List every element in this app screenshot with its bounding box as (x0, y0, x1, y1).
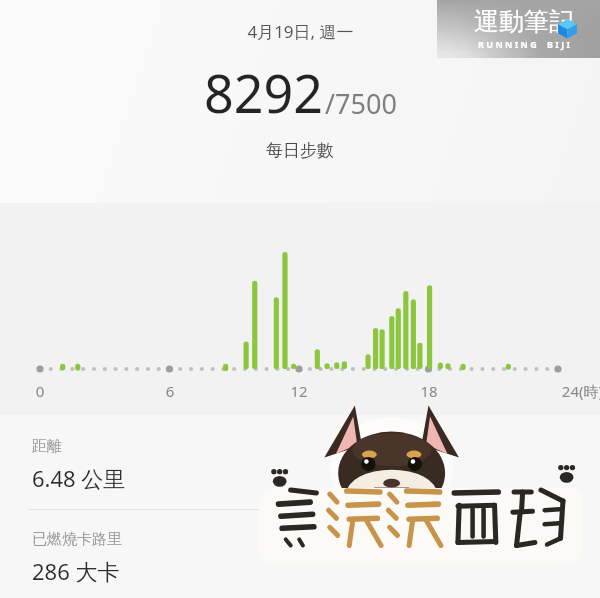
staticText: 12 (279, 381, 319, 401)
staticText: 286 大卡 (32, 556, 120, 586)
staticText: 6 (150, 381, 190, 401)
staticText: 已燃燒卡路里 (32, 530, 122, 549)
button[interactable]: 距離 (0, 415, 600, 509)
staticText: 0 (20, 381, 60, 401)
staticText: R U N N I N G (478, 38, 537, 50)
staticText: 4月19日, 週一 (247, 20, 354, 43)
staticText: 24(時) (513, 381, 600, 401)
staticText: 6.48 公里 (32, 463, 126, 493)
staticText: 距離 (32, 437, 62, 456)
button[interactable]: 已燃燒卡路里 (0, 510, 600, 598)
staticText: /7500 (325, 85, 397, 122)
staticText: 運動筆記 (474, 6, 574, 37)
staticText: B I J I (547, 38, 570, 50)
staticText: 每日步數 (266, 140, 334, 161)
other: 為浪浪而跑 mascot sticker (258, 420, 588, 560)
button[interactable]: Running Biji logo (437, 0, 600, 58)
staticText: 18 (409, 381, 449, 401)
button[interactable]: 0 (0, 203, 600, 415)
staticText: 8292 (204, 57, 323, 128)
